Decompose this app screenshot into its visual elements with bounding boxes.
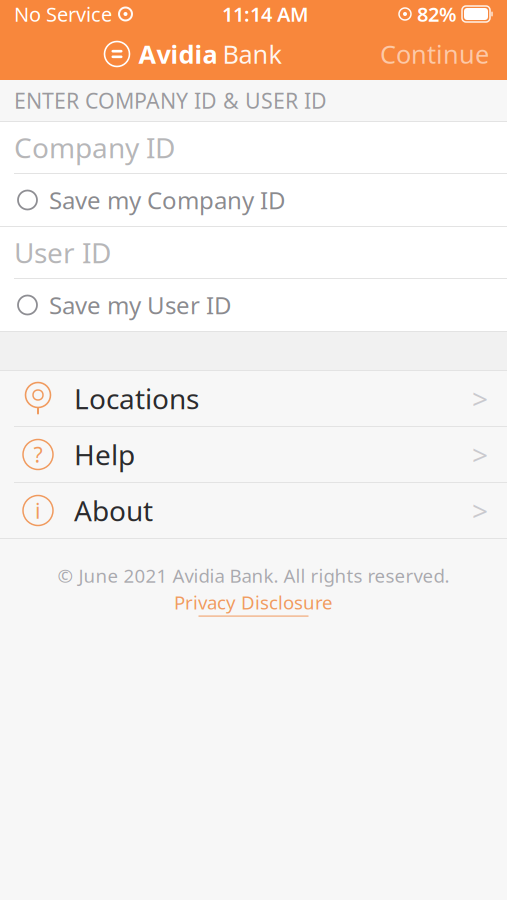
button[interactable]: Continue — [374, 31, 495, 77]
staticText: Save my Company ID — [49, 184, 286, 216]
staticText: Help — [74, 436, 135, 473]
button[interactable]: Save my User ID — [0, 279, 507, 331]
staticText: User ID — [14, 234, 111, 271]
button[interactable]: Privacy Disclosure — [174, 590, 333, 617]
button[interactable]: i — [0, 483, 507, 538]
staticText: Bank — [222, 37, 282, 71]
staticText: > — [472, 492, 488, 529]
staticText: Company ID — [14, 129, 175, 166]
staticText: © June 2021 Avidia Bank. All rights rese… — [57, 563, 449, 588]
staticText: 11:14 AM — [222, 1, 309, 27]
staticText: ? — [33, 440, 42, 469]
staticText: 82% — [417, 1, 457, 27]
staticText: Privacy Disclosure — [174, 590, 333, 615]
staticText: ENTER COMPANY ID & USER ID — [14, 86, 327, 115]
staticText: Avidia — [138, 37, 217, 71]
staticText: About — [74, 492, 153, 529]
staticText: > — [472, 380, 488, 417]
button[interactable]: ? — [0, 427, 507, 482]
staticText: Continue — [380, 37, 489, 71]
staticText: No Service — [14, 1, 112, 27]
staticText: i — [35, 496, 41, 525]
staticText: Locations — [74, 380, 199, 417]
staticText: Save my User ID — [49, 289, 232, 321]
button[interactable]: Locations — [0, 371, 507, 426]
button[interactable]: Save my Company ID — [0, 174, 507, 226]
staticText: > — [472, 436, 488, 473]
